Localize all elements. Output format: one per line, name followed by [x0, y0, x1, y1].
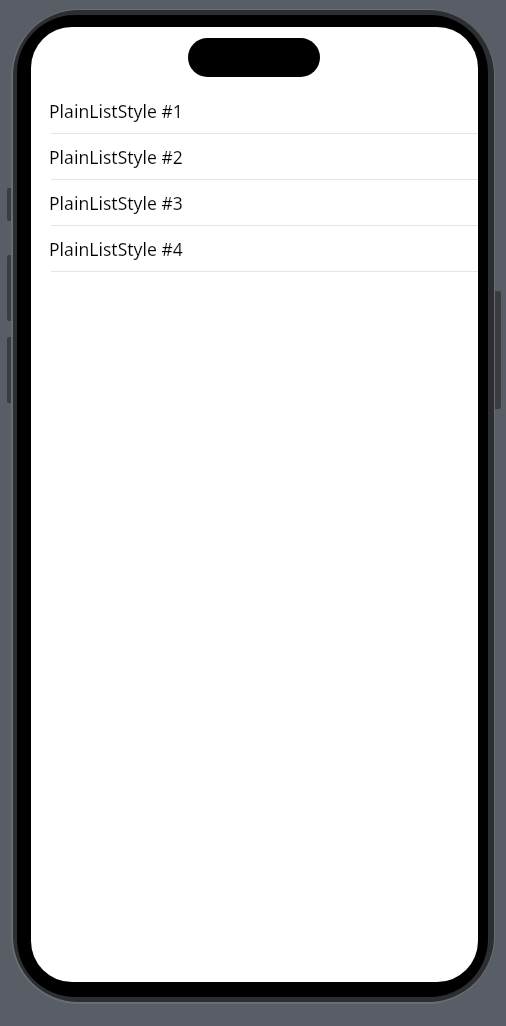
button[interactable]: PlainListStyle #3	[31, 180, 478, 226]
button[interactable]: PlainListStyle #2	[31, 134, 478, 180]
button[interactable]: PlainListStyle #4	[31, 226, 478, 272]
staticText: PlainListStyle #1	[49, 99, 183, 123]
staticText: PlainListStyle #3	[49, 191, 183, 215]
button[interactable]: PlainListStyle #1	[31, 88, 478, 134]
staticText: PlainListStyle #4	[49, 237, 183, 261]
staticText: PlainListStyle #2	[49, 145, 183, 169]
